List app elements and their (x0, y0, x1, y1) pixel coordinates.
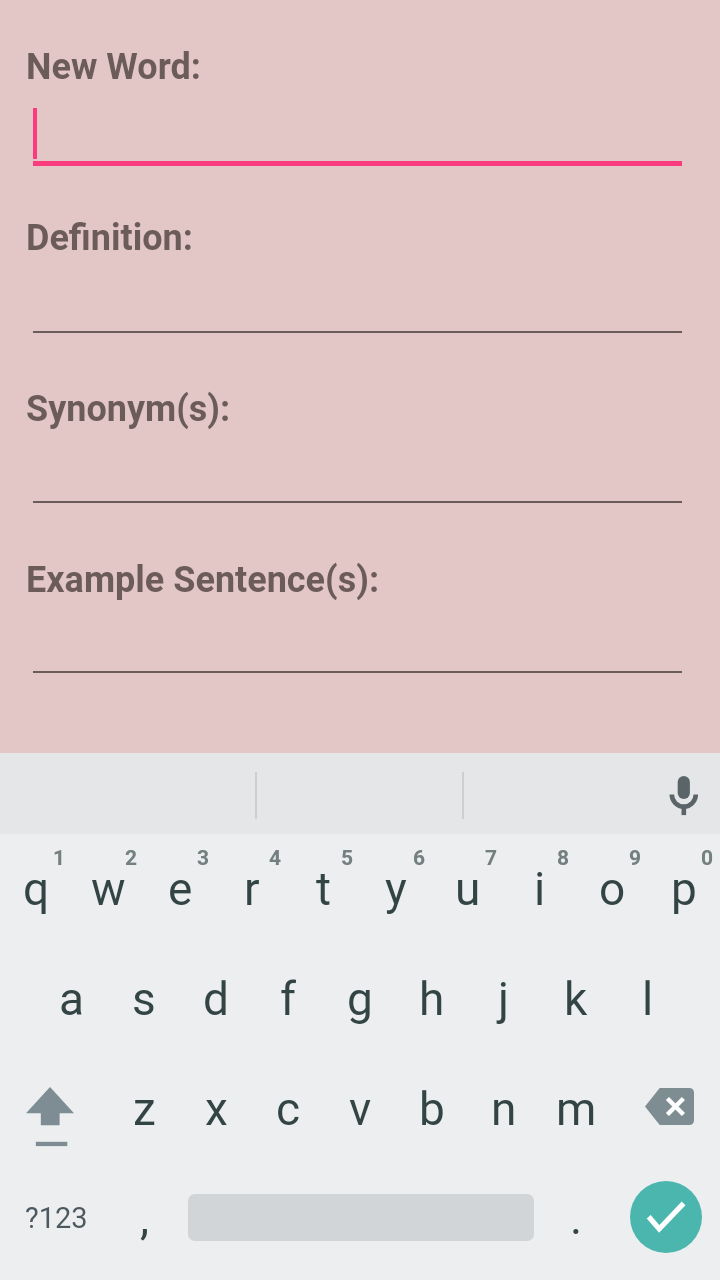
staticText: , (140, 1191, 150, 1245)
button[interactable]: q (0, 834, 72, 944)
staticText: g (347, 972, 373, 1026)
staticText: s (132, 972, 156, 1026)
staticText: 6 (413, 846, 426, 871)
button[interactable]: e (144, 834, 216, 944)
button[interactable]: New Word: (26, 46, 201, 88)
staticText: 3 (197, 846, 210, 871)
button[interactable]: g (324, 944, 396, 1054)
staticText: o (599, 862, 626, 916)
staticText: 1 (53, 846, 66, 871)
button[interactable]: t (288, 834, 360, 944)
staticText: q (23, 862, 50, 916)
staticText: j (498, 972, 510, 1026)
staticText: e (168, 862, 193, 916)
staticText: n (491, 1082, 517, 1136)
staticText: Synonym(s): (26, 388, 231, 430)
staticText: 9 (629, 846, 642, 871)
button[interactable]: r (216, 834, 288, 944)
staticText: 8 (557, 846, 570, 871)
staticText: h (419, 972, 445, 1026)
button[interactable]: z (108, 1054, 180, 1164)
button[interactable]: y (360, 834, 432, 944)
staticText: x (205, 1082, 228, 1136)
staticText: 0 (701, 846, 714, 871)
staticText: 7 (485, 846, 498, 871)
button[interactable]: d (180, 944, 252, 1054)
button[interactable]: w (72, 834, 144, 944)
button[interactable]: Definition: (26, 217, 193, 259)
button[interactable]: i (504, 834, 576, 944)
staticText: v (349, 1082, 372, 1136)
staticText: 5 (341, 846, 354, 871)
button[interactable]: , (110, 1165, 180, 1270)
button[interactable]: Shift (0, 1054, 100, 1164)
staticText: Definition: (26, 217, 193, 259)
button[interactable]: . (546, 1165, 606, 1270)
staticText: m (556, 1082, 597, 1136)
button[interactable]: Voice input (644, 753, 720, 834)
button[interactable]: h (396, 944, 468, 1054)
button[interactable]: c (252, 1054, 324, 1164)
button[interactable]: s (108, 944, 180, 1054)
staticText: d (203, 972, 229, 1026)
staticText: 2 (125, 846, 138, 871)
button[interactable]: Backspace (620, 1054, 720, 1164)
staticText: i (534, 862, 546, 916)
staticText: w (91, 862, 126, 916)
button[interactable]: l (612, 944, 684, 1054)
staticText: a (59, 972, 85, 1026)
staticText: f (280, 972, 296, 1026)
button[interactable]: v (324, 1054, 396, 1164)
button[interactable]: ?123 (8, 1165, 104, 1270)
button[interactable]: p (648, 834, 720, 944)
staticText: b (419, 1082, 445, 1136)
staticText: 4 (269, 846, 282, 871)
button[interactable]: b (396, 1054, 468, 1164)
button[interactable]: f (252, 944, 324, 1054)
staticText: p (671, 862, 697, 916)
staticText: y (385, 862, 407, 916)
staticText: r (244, 862, 260, 916)
button[interactable]: Enter (630, 1181, 702, 1253)
button[interactable]: k (540, 944, 612, 1054)
button[interactable]: a (36, 944, 108, 1054)
staticText: k (564, 972, 588, 1026)
staticText: c (276, 1082, 301, 1136)
button[interactable]: u (432, 834, 504, 944)
button[interactable]: Synonym(s): (26, 388, 231, 430)
staticText: . (570, 1191, 583, 1245)
staticText: ?123 (25, 1201, 88, 1235)
button[interactable]: o (576, 834, 648, 944)
staticText: Example Sentence(s): (26, 559, 380, 601)
staticText: u (455, 862, 481, 916)
button[interactable]: m (540, 1054, 612, 1164)
staticText: z (133, 1082, 156, 1136)
staticText: t (316, 862, 332, 916)
staticText: l (642, 972, 654, 1026)
button[interactable]: x (180, 1054, 252, 1164)
button[interactable]: j (468, 944, 540, 1054)
button[interactable]: Example Sentence(s): (26, 559, 380, 601)
staticText: New Word: (26, 46, 201, 88)
button[interactable]: n (468, 1054, 540, 1164)
